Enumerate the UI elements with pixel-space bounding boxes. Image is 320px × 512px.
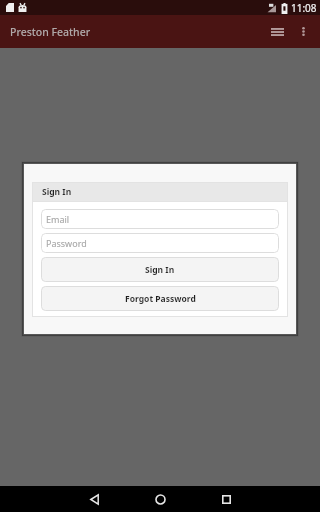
staticText: Email [46, 213, 70, 225]
staticText: 11:08 [291, 1, 317, 15]
button[interactable]: Back [75, 486, 113, 512]
staticText: Preston Feather [10, 25, 91, 39]
button[interactable]: Password [41, 233, 279, 253]
button[interactable]: Recent apps [207, 486, 245, 512]
staticText: Forgot Password [125, 293, 196, 305]
button[interactable]: Sign In [41, 257, 279, 282]
staticText: Sign In [42, 186, 72, 198]
button[interactable]: Menu [254, 15, 290, 48]
staticText: Password [46, 237, 87, 249]
button[interactable]: Forgot Password [41, 286, 279, 311]
button[interactable]: Email [41, 209, 279, 229]
staticText: Sign In [145, 264, 175, 276]
button[interactable]: More options [290, 15, 317, 48]
button[interactable]: Home [141, 486, 179, 512]
